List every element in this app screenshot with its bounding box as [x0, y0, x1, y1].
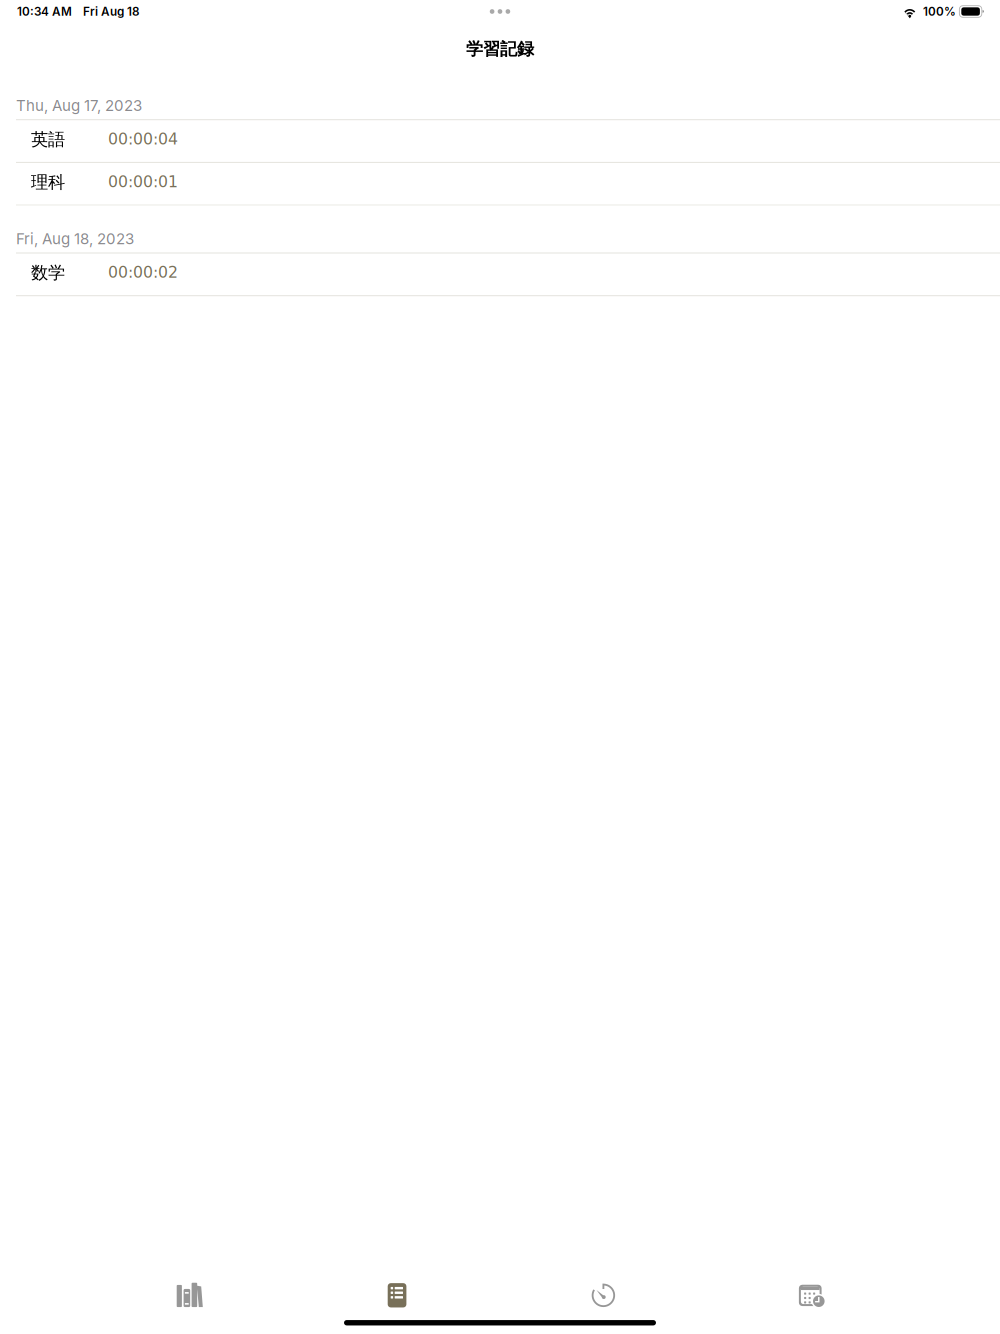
staticText: 学習記録	[466, 38, 534, 60]
staticText: 100%	[923, 4, 956, 19]
staticText: Fri, Aug 18, 2023	[16, 230, 134, 248]
staticText: 00:00:04	[108, 130, 178, 148]
button[interactable]: 理科	[16, 163, 1000, 205]
staticText: 00:00:02	[108, 263, 178, 281]
staticText: Thu, Aug 17, 2023	[16, 96, 142, 114]
staticText: 00:00:01	[108, 173, 178, 191]
button[interactable]: 数学	[16, 253, 1000, 295]
staticText: 理科	[31, 171, 65, 193]
button[interactable]: Records	[293, 1276, 500, 1314]
staticText: 10:34 AM	[17, 4, 72, 19]
staticText: Fri Aug 18	[83, 4, 140, 19]
button[interactable]: Timer	[500, 1276, 707, 1314]
button[interactable]: Calendar	[707, 1276, 914, 1314]
staticText: 英語	[31, 129, 65, 150]
staticText: 数学	[31, 262, 65, 284]
button[interactable]: 英語	[16, 120, 1000, 162]
button[interactable]: Subjects	[86, 1276, 293, 1314]
